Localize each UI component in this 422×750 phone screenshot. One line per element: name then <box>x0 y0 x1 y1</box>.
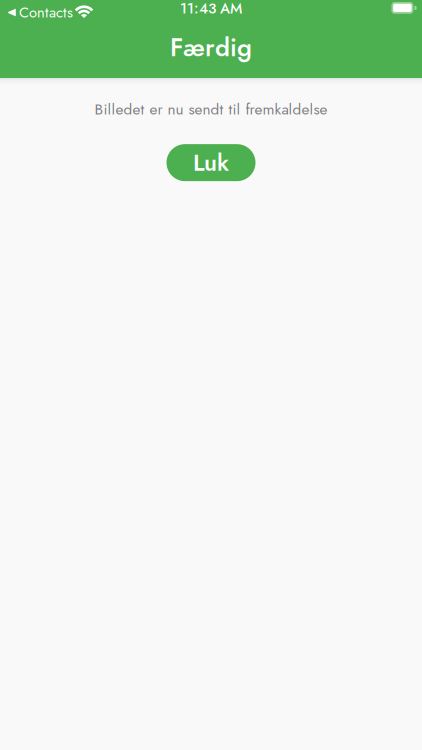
staticText: Luk <box>193 146 229 179</box>
staticText: 11:43 AM <box>180 0 242 19</box>
navigationBar: Færdig <box>0 0 422 78</box>
button[interactable]: Luk <box>166 144 255 181</box>
button[interactable]: Back to Contacts <box>7 2 93 23</box>
staticText: Billedet er nu sendt til fremkaldelse <box>94 98 327 120</box>
staticText: Contacts <box>19 2 73 23</box>
staticText: Færdig <box>170 29 252 66</box>
